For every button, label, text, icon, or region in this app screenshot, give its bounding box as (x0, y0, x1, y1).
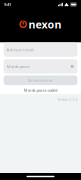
staticText: 9:41 (4, 2, 11, 7)
button[interactable]: Mot de passe (4, 59, 77, 74)
staticText: Mot de passe oublié (23, 87, 57, 93)
button[interactable]: Show password (70, 64, 74, 69)
button[interactable]: Mot de passe oublié (4, 86, 77, 94)
button[interactable]: Se connecter (4, 75, 77, 85)
staticText: Se connecter (28, 78, 53, 83)
button[interactable]: Adresse e-mail (4, 42, 77, 57)
staticText: Version 2.5.0 (57, 98, 77, 101)
staticText: Adresse e-mail (7, 47, 34, 52)
staticText: nexon (28, 17, 61, 31)
staticText: Mot de passe (7, 64, 30, 69)
